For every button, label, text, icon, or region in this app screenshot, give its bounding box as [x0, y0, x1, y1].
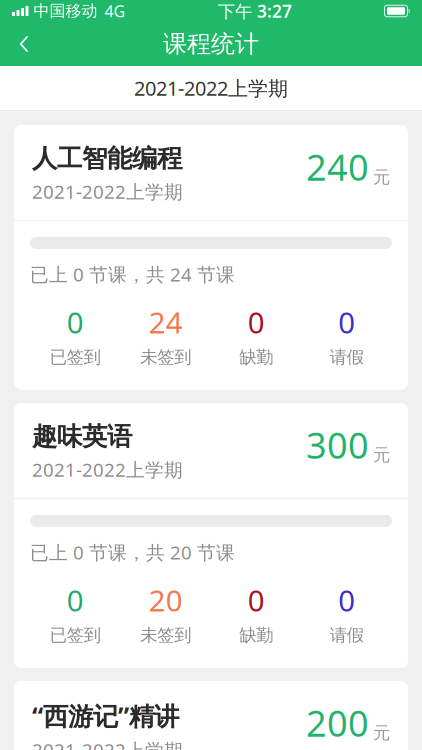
- staticText: 缺勤: [239, 347, 273, 368]
- staticText: 元: [373, 166, 390, 188]
- staticText: 未签到: [140, 347, 191, 368]
- staticText: 课程统计: [163, 29, 259, 59]
- staticText: 300: [306, 421, 369, 469]
- staticText: 下午 3:27: [218, 0, 292, 22]
- staticText: 中国移动: [33, 1, 97, 21]
- staticText: 请假: [330, 347, 364, 368]
- staticText: 已上 0 节课，共 24 节课: [30, 262, 235, 287]
- button[interactable]: 人工智能编程: [14, 125, 408, 390]
- staticText: 元: [373, 444, 390, 466]
- staticText: 请假: [330, 625, 364, 646]
- staticText: 已签到: [50, 347, 101, 368]
- staticText: “西游记”精讲: [32, 699, 179, 732]
- staticText: 未签到: [140, 625, 191, 646]
- staticText: 20: [149, 581, 183, 620]
- staticText: 200: [306, 699, 369, 747]
- staticText: 缺勤: [239, 625, 273, 646]
- staticText: 已上 0 节课，共 20 节课: [30, 540, 235, 565]
- staticText: 元: [373, 722, 390, 744]
- staticText: 0: [67, 303, 84, 342]
- staticText: 趣味英语: [32, 421, 132, 452]
- staticText: 0: [248, 303, 265, 342]
- button[interactable]: Back: [0, 22, 48, 66]
- staticText: 240: [306, 143, 369, 191]
- staticText: 0: [338, 581, 355, 620]
- staticText: 2021-2022上学期: [134, 75, 288, 101]
- staticText: 24: [149, 303, 183, 342]
- staticText: 2021-2022上学期: [32, 457, 183, 482]
- staticText: 0: [338, 303, 355, 342]
- button[interactable]: 趣味英语: [14, 403, 408, 668]
- staticText: 0: [248, 581, 265, 620]
- button[interactable]: “西游记”精讲: [14, 681, 408, 750]
- staticText: 2021-2022上学期: [32, 737, 183, 750]
- staticText: 人工智能编程: [32, 143, 182, 174]
- staticText: 2021-2022上学期: [32, 179, 183, 204]
- staticText: 0: [67, 581, 84, 620]
- staticText: 4G: [104, 0, 125, 22]
- staticText: 已签到: [50, 625, 101, 646]
